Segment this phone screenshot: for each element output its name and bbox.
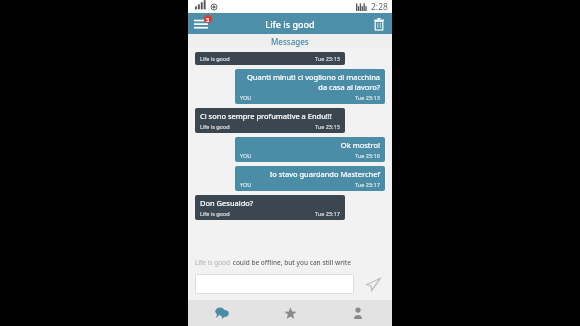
button[interactable]: Ok mostro! (235, 137, 385, 162)
staticText: Io stavo guardando Masterchef (240, 169, 380, 179)
staticText: Tue 23:17 (315, 210, 340, 217)
button[interactable]: Io stavo guardando Masterchef (235, 166, 385, 191)
button[interactable]: Quanti minuti ci vogliono di macchina da… (235, 69, 385, 104)
staticText: Tue 23:15 (315, 123, 340, 130)
button[interactable]: Don Gesualdo? (195, 195, 345, 220)
staticText: Life is good (200, 123, 230, 130)
staticText: YOU (240, 181, 252, 188)
button[interactable] (195, 274, 354, 294)
button[interactable]: Open navigation menu (191, 14, 211, 33)
staticText: Tue 23:13 (355, 94, 380, 101)
staticText: Ok mostro! (240, 140, 380, 150)
staticText: Life is good (265, 18, 315, 30)
staticText: Quanti minuti ci vogliono di macchina da… (240, 72, 380, 92)
button[interactable]: Favourites (256, 300, 324, 326)
staticText: 3 (206, 16, 210, 23)
staticText: Tue 23:16 (355, 152, 380, 159)
button[interactable]: Life is good (195, 52, 345, 65)
staticText: Tue 23:17 (355, 181, 380, 188)
staticText: Life is good (200, 210, 230, 217)
staticText: YOU (240, 152, 252, 159)
staticText: Ci sono sempre profumative a Endu!!! (200, 111, 340, 121)
staticText: could be offline, but you can still writ… (231, 258, 351, 267)
button[interactable]: Profile (324, 300, 392, 326)
staticText: Life is good (195, 258, 231, 267)
staticText: Don Gesualdo? (200, 198, 340, 208)
staticText: YOU (240, 94, 252, 101)
button[interactable]: Delete conversation (370, 15, 388, 33)
button[interactable]: Ci sono sempre profumative a Endu!!! (195, 108, 345, 133)
button[interactable]: Chats (188, 300, 256, 326)
button[interactable]: Send message (362, 273, 384, 295)
staticText: Tue 23:13 (315, 55, 340, 62)
staticText: Messages (271, 36, 309, 47)
staticText: Life is good (200, 55, 230, 62)
staticText: 2:28 (371, 1, 388, 13)
